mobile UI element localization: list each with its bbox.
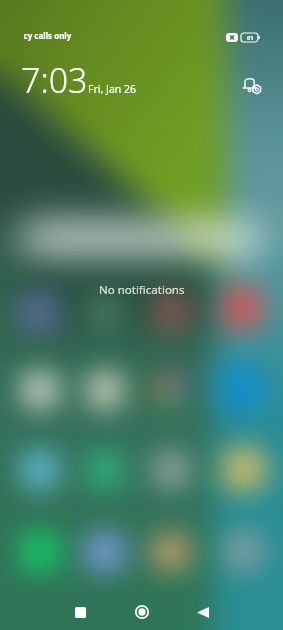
button[interactable]: Notification settings (237, 70, 267, 100)
button[interactable]: Back (185, 594, 221, 630)
staticText: Emergency calls only (24, 30, 72, 41)
button[interactable]: Recent apps (62, 594, 98, 630)
button[interactable]: Home (124, 594, 160, 630)
staticText: No notifications (99, 282, 185, 298)
staticText: 7:03 (21, 57, 88, 103)
staticText: Fri, Jan 26 (88, 82, 137, 96)
staticText: 61 (247, 34, 254, 41)
